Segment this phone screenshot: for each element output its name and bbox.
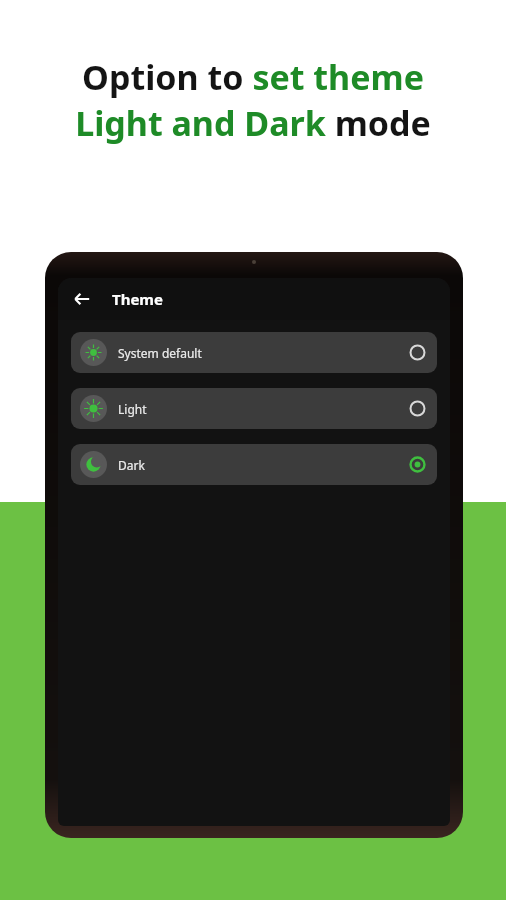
staticText: Option to set theme Light and Dark mode	[24, 54, 482, 146]
staticText: Theme	[112, 289, 163, 309]
staticText: Light	[118, 401, 147, 417]
button[interactable]: Dark	[71, 444, 437, 485]
button[interactable]: Back	[66, 283, 98, 315]
staticText: System default	[118, 345, 202, 361]
button[interactable]: Light	[71, 388, 437, 429]
button[interactable]: System default	[71, 332, 437, 373]
staticText: Dark	[118, 457, 145, 473]
